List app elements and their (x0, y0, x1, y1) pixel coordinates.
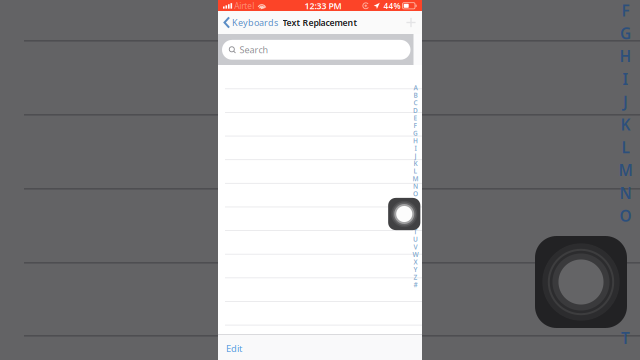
staticText: Q (413, 204, 418, 213)
staticText: 44% (384, 0, 401, 11)
staticText: U (413, 235, 418, 244)
staticText: Edit (226, 342, 242, 355)
staticText: K (620, 114, 630, 135)
button[interactable]: Keyboards (218, 11, 282, 34)
staticText: S (413, 220, 417, 229)
staticText: Search (239, 44, 268, 56)
staticText: N (413, 182, 418, 191)
staticText: Airtel (234, 0, 254, 11)
staticText: D (413, 106, 418, 115)
staticText: N (619, 182, 631, 203)
staticText: # (413, 280, 417, 289)
staticText: L (621, 137, 629, 158)
staticText: T (621, 327, 630, 349)
staticText: I (622, 68, 628, 89)
button[interactable]: Section index (411, 84, 420, 289)
staticText: P (413, 197, 417, 206)
staticText: X (413, 258, 417, 266)
button[interactable]: Edit (218, 337, 250, 360)
staticText: T (413, 227, 417, 236)
staticText: J (414, 151, 416, 160)
staticText: H (413, 136, 418, 145)
staticText: F (413, 121, 417, 130)
staticText: F (621, 0, 629, 21)
staticText: G (620, 23, 631, 44)
staticText: C (413, 98, 417, 107)
staticText: V (413, 242, 417, 251)
staticText: M (618, 160, 632, 181)
button[interactable]: Search (222, 40, 410, 60)
staticText: O (413, 189, 418, 198)
staticText: G (413, 129, 418, 138)
staticText: I (414, 144, 416, 153)
staticText: M (412, 174, 418, 183)
staticText: E (413, 113, 417, 122)
staticText: H (619, 46, 631, 67)
staticText: W (412, 250, 418, 259)
staticText: Keyboards (232, 16, 278, 29)
staticText: Z (413, 273, 417, 282)
staticText: J (623, 91, 628, 112)
staticText: K (413, 159, 417, 168)
staticText: L (413, 167, 417, 175)
staticText: O (619, 205, 631, 226)
staticText: R (413, 212, 417, 221)
staticText: A (413, 83, 417, 92)
staticText: Y (413, 265, 417, 274)
button[interactable]: Add text replacement (400, 11, 422, 34)
staticText: 12:33 PM (304, 0, 341, 12)
staticText: Text Replacement (282, 17, 357, 28)
staticText: B (413, 91, 417, 100)
